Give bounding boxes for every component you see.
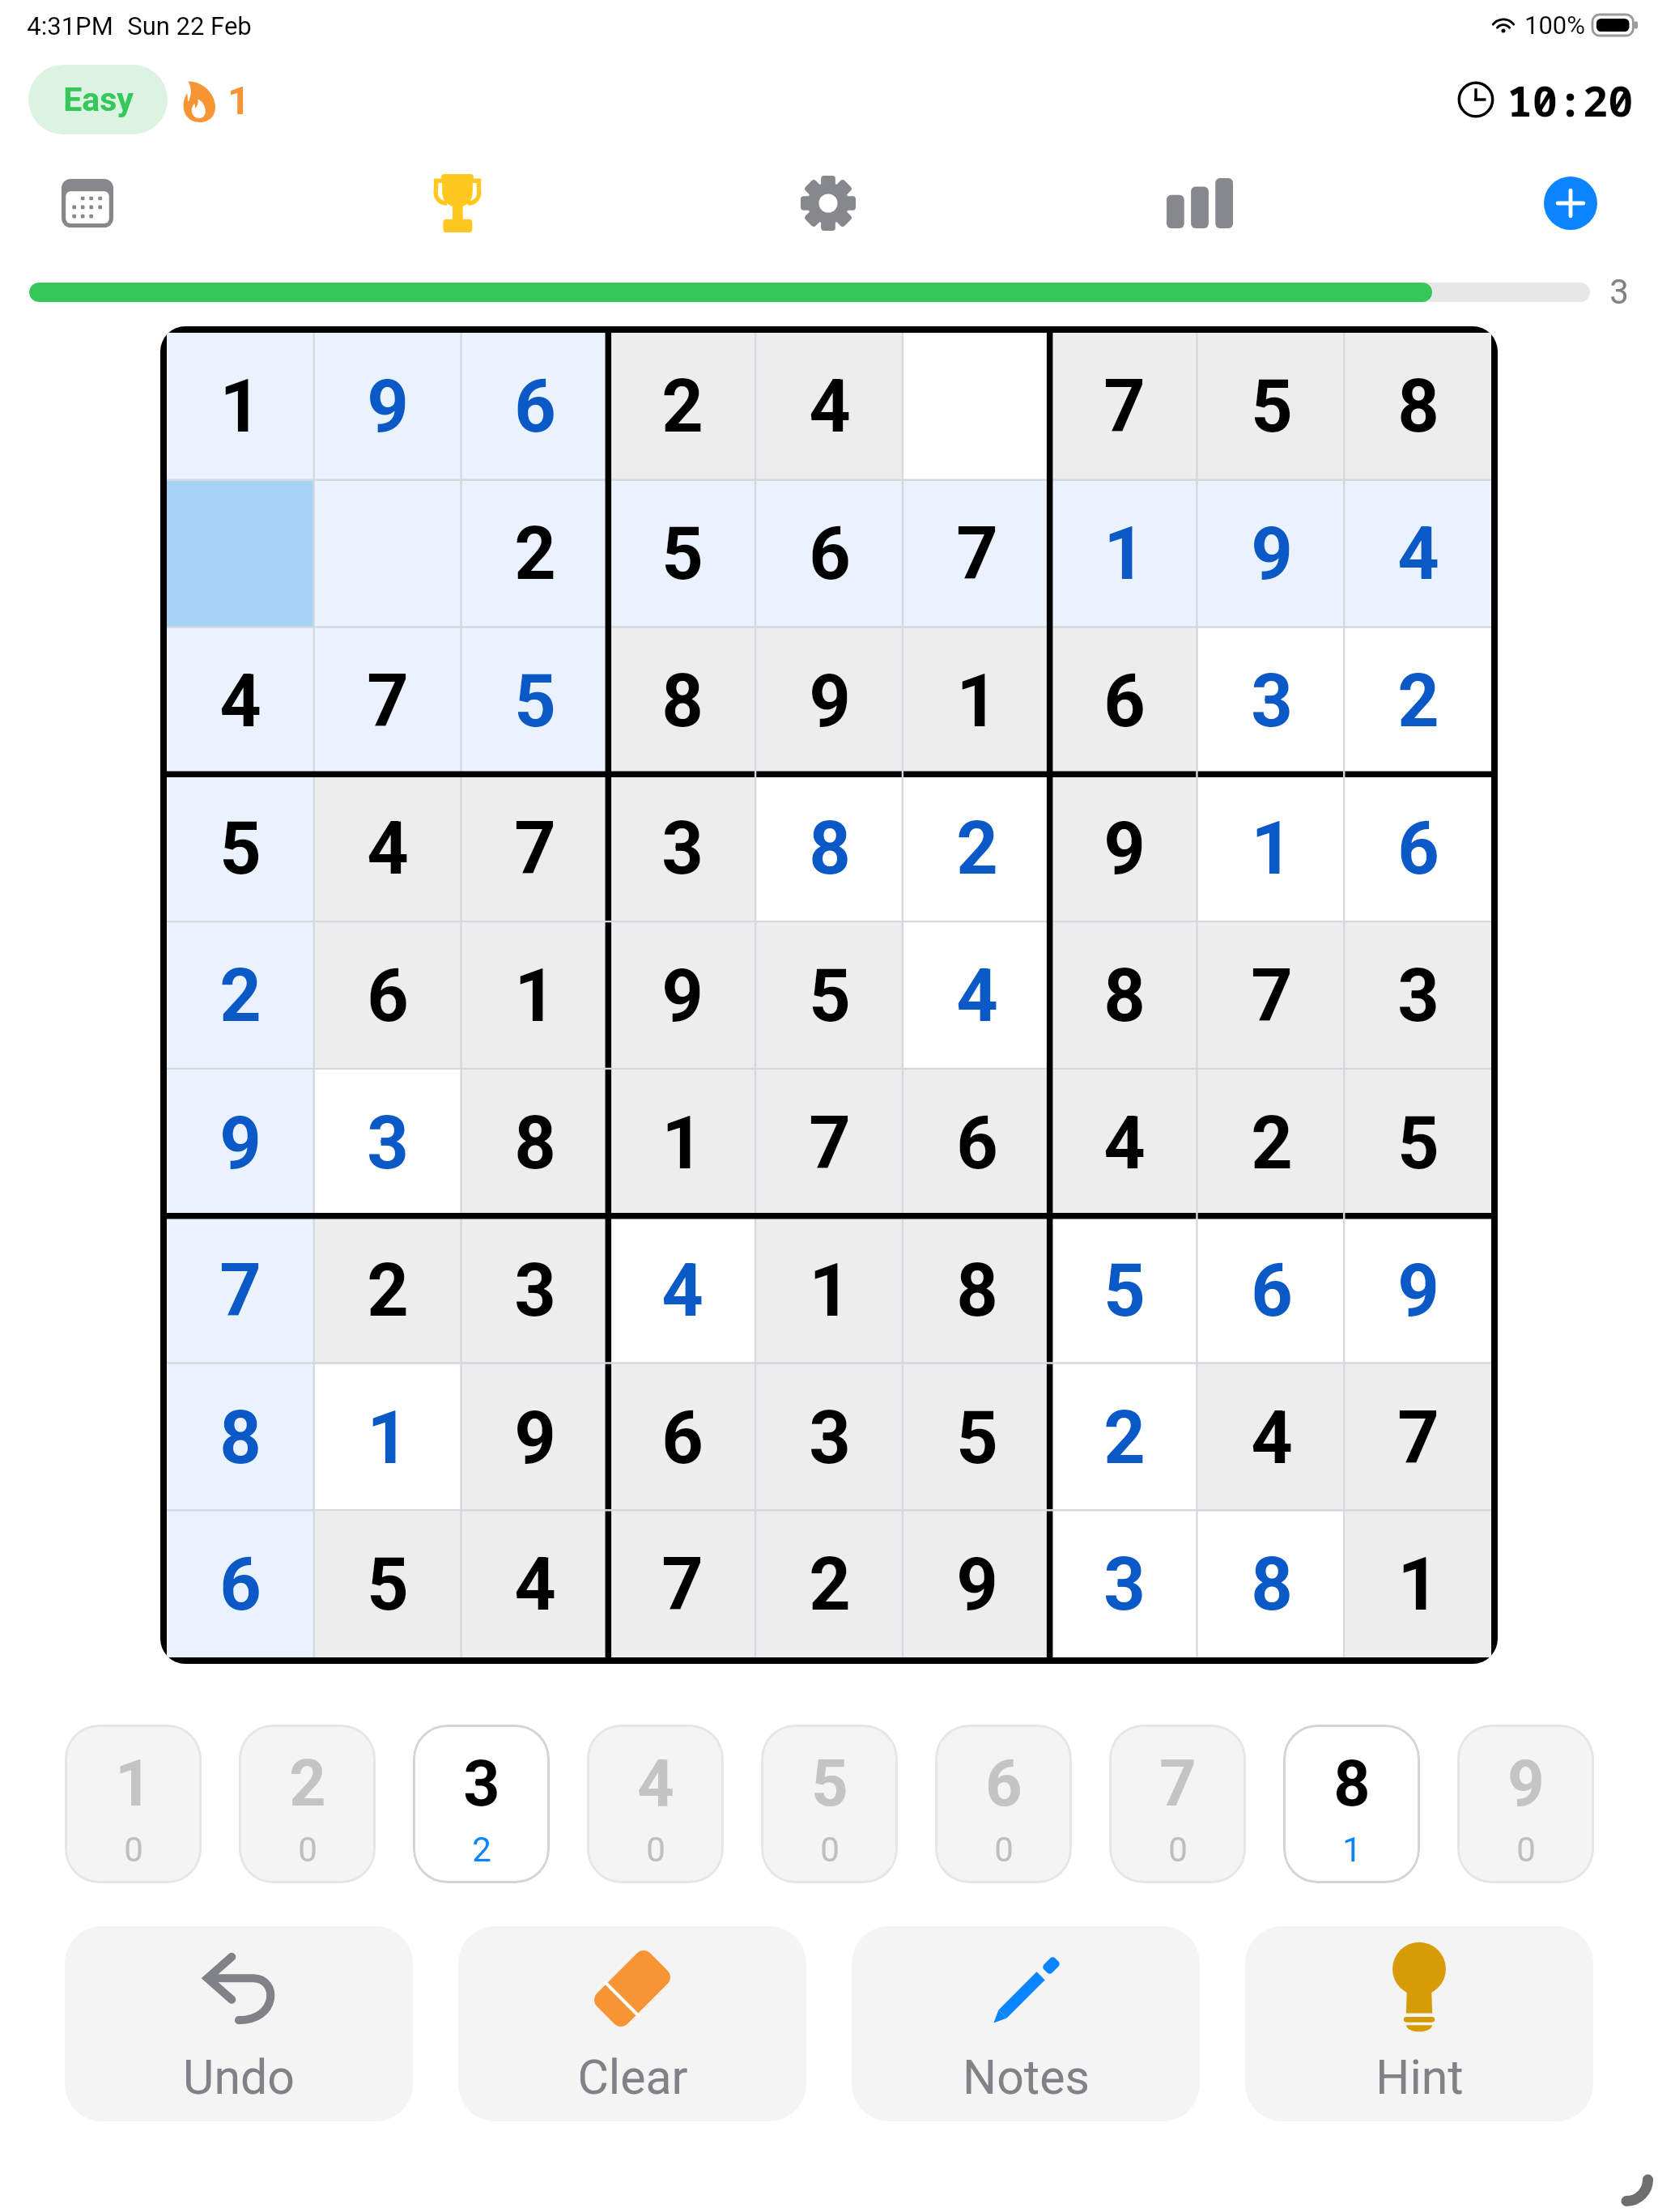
button[interactable]: 9 <box>461 1364 609 1512</box>
button[interactable]: 10:20 <box>1457 71 1634 128</box>
button[interactable]: 4 <box>1198 1364 1346 1512</box>
button[interactable]: 9 <box>1346 1217 1491 1364</box>
button[interactable]: Trophy <box>415 161 500 245</box>
button[interactable]: 9 <box>1051 775 1198 922</box>
button[interactable]: 2 <box>1051 1364 1198 1512</box>
button[interactable]: 4 <box>587 1725 724 1883</box>
button[interactable]: 8 <box>1346 333 1491 480</box>
button[interactable]: Clear <box>458 1926 806 2121</box>
button[interactable]: 5 <box>1051 1217 1198 1364</box>
button[interactable]: 5 <box>1346 1070 1491 1217</box>
button[interactable]: 7 <box>903 480 1051 627</box>
button[interactable]: 1 <box>1346 1512 1491 1657</box>
button[interactable]: 2 <box>903 775 1051 922</box>
button[interactable]: 6 <box>461 333 609 480</box>
button[interactable]: 1 <box>609 1070 756 1217</box>
button[interactable]: 4 <box>609 1217 756 1364</box>
button[interactable]: 5 <box>1198 333 1346 480</box>
button[interactable]: 5 <box>761 1725 898 1883</box>
button[interactable]: 1 <box>903 627 1051 775</box>
button[interactable]: 4 <box>1346 480 1491 627</box>
button[interactable]: 5 <box>609 480 756 627</box>
button[interactable]: 8 <box>609 627 756 775</box>
button[interactable]: 8 <box>756 775 903 922</box>
button[interactable]: 6 <box>935 1725 1072 1883</box>
button[interactable]: 8 <box>461 1070 609 1217</box>
button[interactable]: 8 <box>1283 1725 1420 1883</box>
button[interactable]: 8 <box>1198 1512 1346 1657</box>
button[interactable]: 1 <box>65 1725 202 1883</box>
button[interactable]: 3 <box>413 1725 550 1883</box>
button[interactable]: 3 <box>609 775 756 922</box>
button[interactable]: 9 <box>314 333 461 480</box>
button[interactable]: 1 <box>314 1364 461 1512</box>
button[interactable]: 9 <box>756 627 903 775</box>
button[interactable]: 7 <box>1051 333 1198 480</box>
button[interactable]: Easy <box>28 65 168 134</box>
button[interactable]: 2 <box>756 1512 903 1657</box>
button[interactable]: 4 <box>167 627 314 775</box>
button[interactable]: 7 <box>167 1217 314 1364</box>
button[interactable]: 4 <box>903 922 1051 1070</box>
button[interactable]: 8 <box>903 1217 1051 1364</box>
button[interactable]: 1 <box>756 1217 903 1364</box>
button[interactable]: 6 <box>167 1512 314 1657</box>
button[interactable]: 3 <box>756 1364 903 1512</box>
button[interactable]: 2 <box>1198 1070 1346 1217</box>
button[interactable]: 9 <box>903 1512 1051 1657</box>
button[interactable]: 1 <box>1051 480 1198 627</box>
button[interactable]: 6 <box>756 480 903 627</box>
button[interactable]: 7 <box>1346 1364 1491 1512</box>
button[interactable]: 4 <box>314 775 461 922</box>
button[interactable]: 4 <box>1051 1070 1198 1217</box>
button[interactable]: 2 <box>609 333 756 480</box>
button[interactable]: 5 <box>756 922 903 1070</box>
button[interactable]: Settings <box>786 161 870 245</box>
button[interactable]: 8 <box>167 1364 314 1512</box>
button[interactable]: 2 <box>461 480 609 627</box>
button[interactable]: 3 <box>1346 922 1491 1070</box>
button[interactable] <box>903 333 1051 480</box>
button[interactable]: 5 <box>167 775 314 922</box>
button[interactable]: 2 <box>239 1725 376 1883</box>
button[interactable]: 6 <box>314 922 461 1070</box>
button[interactable]: 2 <box>314 1217 461 1364</box>
button[interactable]: 9 <box>1198 480 1346 627</box>
button[interactable]: Undo <box>65 1926 413 2121</box>
button[interactable]: 8 <box>1051 922 1198 1070</box>
button[interactable]: 6 <box>1198 1217 1346 1364</box>
button[interactable]: 1 <box>183 71 250 130</box>
button[interactable]: 3 <box>1198 627 1346 775</box>
button[interactable]: 5 <box>461 627 609 775</box>
button[interactable]: 5 <box>903 1364 1051 1512</box>
button[interactable]: 7 <box>756 1070 903 1217</box>
button[interactable]: 9 <box>609 922 756 1070</box>
button[interactable]: 7 <box>461 775 609 922</box>
button[interactable]: 1 <box>1198 775 1346 922</box>
button[interactable]: 6 <box>903 1070 1051 1217</box>
button[interactable] <box>167 480 314 627</box>
button[interactable]: 3 <box>314 1070 461 1217</box>
button[interactable]: 7 <box>1109 1725 1246 1883</box>
button[interactable]: Notes <box>852 1926 1200 2121</box>
button[interactable]: New game <box>1544 177 1597 230</box>
button[interactable]: 6 <box>609 1364 756 1512</box>
button[interactable]: 2 <box>1346 627 1491 775</box>
button[interactable]: 4 <box>461 1512 609 1657</box>
button[interactable]: 7 <box>609 1512 756 1657</box>
button[interactable]: 7 <box>314 627 461 775</box>
button[interactable]: 1 <box>461 922 609 1070</box>
button[interactable]: 6 <box>1051 627 1198 775</box>
button[interactable]: 1 <box>167 333 314 480</box>
button[interactable] <box>314 480 461 627</box>
button[interactable]: Calendar <box>45 161 130 245</box>
button[interactable]: Statistics <box>1158 161 1242 245</box>
button[interactable]: 5 <box>314 1512 461 1657</box>
button[interactable]: 6 <box>1346 775 1491 922</box>
button[interactable]: 9 <box>1457 1725 1594 1883</box>
button[interactable]: 3 <box>1051 1512 1198 1657</box>
button[interactable]: 2 <box>167 922 314 1070</box>
button[interactable]: 9 <box>167 1070 314 1217</box>
button[interactable]: 4 <box>756 333 903 480</box>
button[interactable]: Hint <box>1245 1926 1593 2121</box>
